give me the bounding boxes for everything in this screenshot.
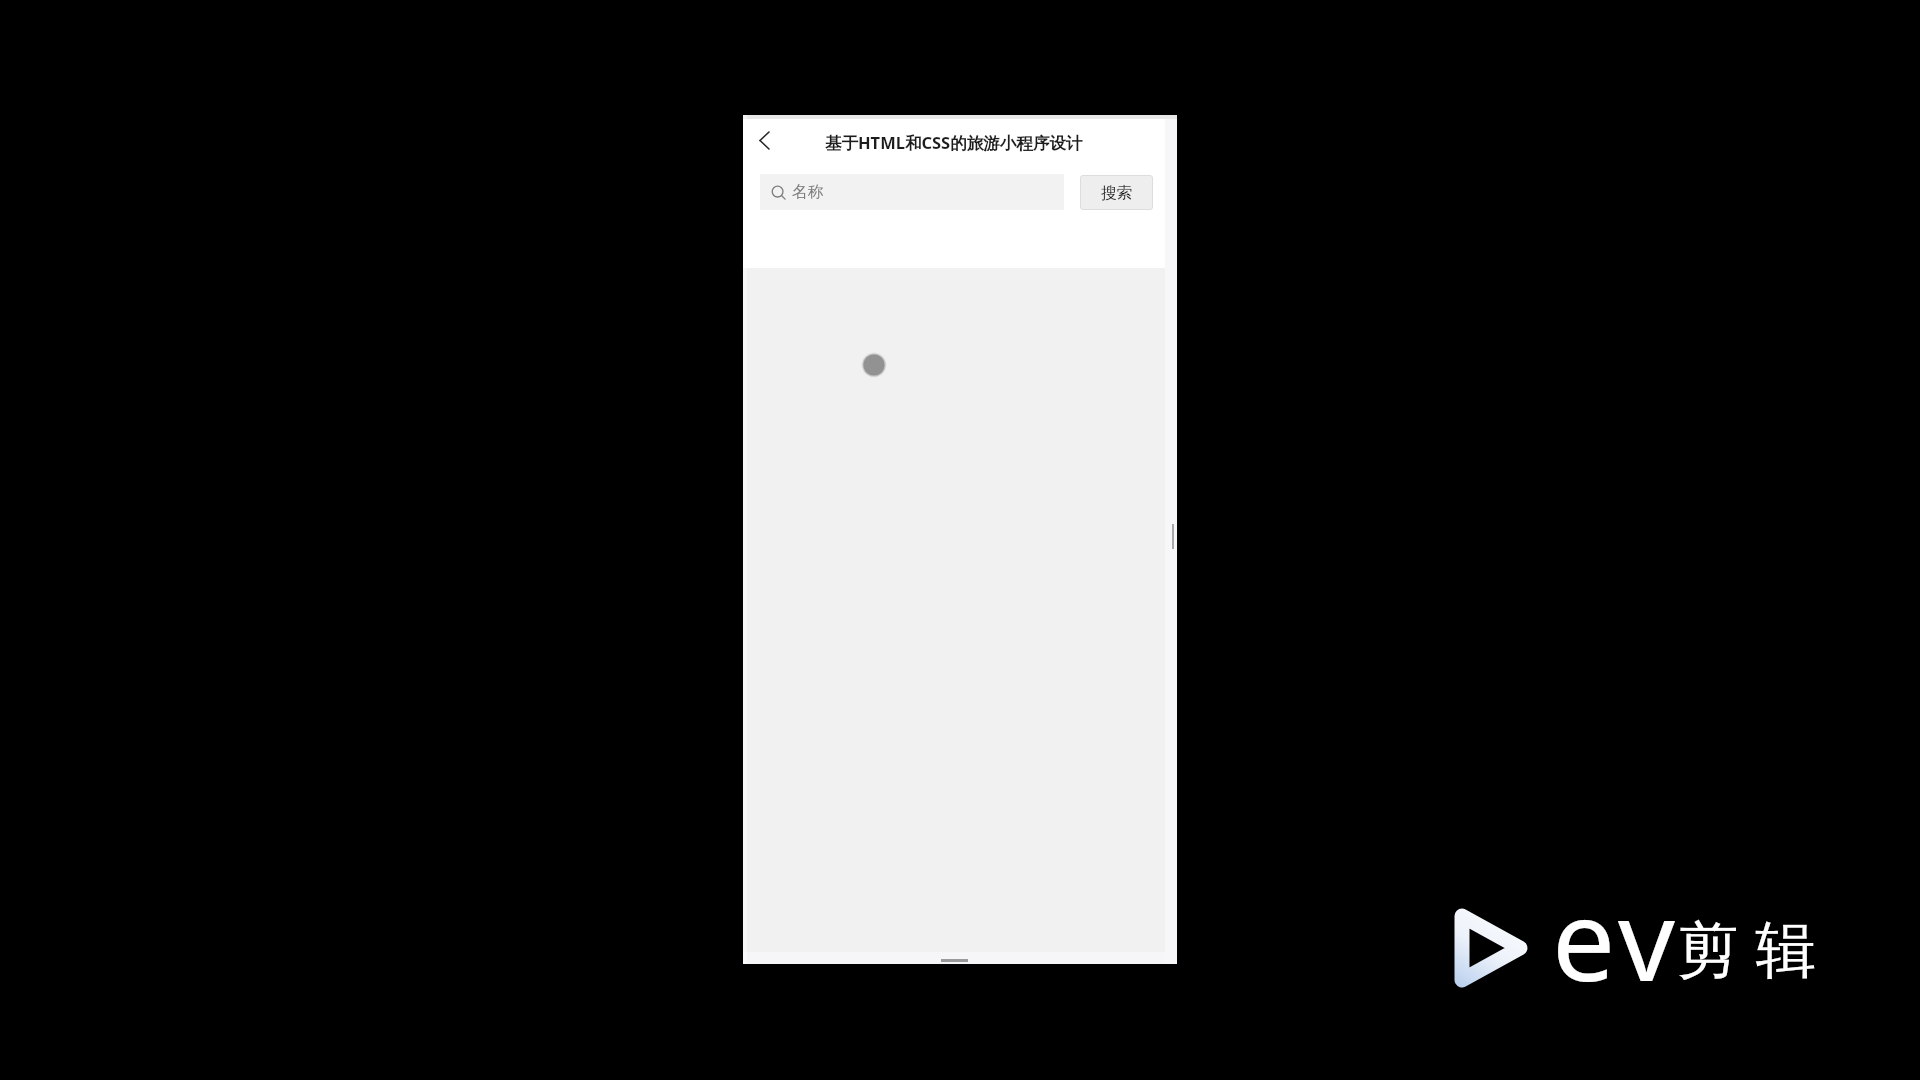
button[interactable]: 搜索 — [1080, 175, 1153, 210]
staticText: 名称 — [792, 182, 824, 202]
button[interactable]: Back — [747, 121, 785, 159]
staticText: 搜索 — [1101, 183, 1132, 203]
staticText: 剪辑 — [1669, 912, 1825, 989]
button[interactable]: 名称 — [760, 174, 1064, 210]
staticText: ev — [1552, 861, 1680, 1014]
staticText: 基于HTML和CSS的旅游小程序设计 — [825, 131, 1083, 154]
